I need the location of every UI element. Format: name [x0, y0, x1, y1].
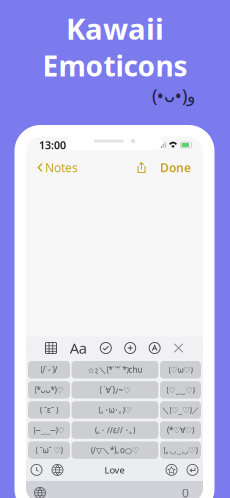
staticText: ＼(♡_♡)／	[161, 405, 199, 415]
staticText: Notes	[45, 159, 78, 175]
button[interactable]: Table	[45, 342, 56, 353]
button[interactable]: Recents	[26, 464, 47, 475]
button[interactable]: Love	[68, 459, 161, 480]
button[interactable]: ( ˉεˉ )	[28, 401, 70, 419]
button[interactable]: Return	[182, 464, 203, 475]
staticText: Aa	[70, 338, 87, 358]
button[interactable]: Done	[150, 154, 197, 180]
staticText: (*ᴗᴗ*)♡	[34, 384, 63, 395]
button[interactable]: Next keyboard	[26, 483, 46, 498]
button[interactable]: (♡ω♡)	[160, 361, 201, 378]
button[interactable]: ＼(♡_♡)／	[160, 401, 201, 419]
button[interactable]: (♡‿‿♡)	[160, 381, 201, 399]
button[interactable]: Next keyboard	[47, 464, 68, 475]
staticText: (♡ω♡)	[168, 364, 192, 375]
staticText: (｡･ω･｡)♡	[98, 405, 131, 415]
button[interactable]: (*♡∀♡)	[160, 421, 201, 439]
staticText: (/▽＼*)｡o○♡	[91, 445, 139, 455]
button[interactable]: Favorites	[161, 464, 182, 475]
staticText: 13:00	[39, 138, 66, 152]
button[interactable]: ☆ﾐ＼(*ˊ꒳ˋ*)chu	[72, 361, 158, 378]
staticText: (*♡∀♡)	[167, 425, 194, 435]
button[interactable]: (｡◡‿◡♡)	[160, 441, 201, 459]
button[interactable]: Close	[174, 343, 184, 353]
staticText: Emoticons	[42, 47, 187, 84]
button[interactable]: Share	[133, 158, 150, 177]
staticText: 0	[182, 485, 189, 498]
button[interactable]: (｡･ //ε// ･｡)	[72, 421, 158, 439]
staticText: (｡◡‿◡♡)	[163, 445, 197, 455]
button[interactable]: ( ´∀`)ﾉ~♡	[72, 381, 158, 399]
button[interactable]: (*ᴗᴗ*)♡	[28, 381, 70, 399]
button[interactable]: (｡･ω･｡)♡	[72, 401, 158, 419]
button[interactable]: Aa	[70, 338, 87, 358]
button[interactable]: (─‿‿─)♡	[28, 421, 70, 439]
staticText: Love	[104, 464, 124, 476]
button[interactable]: (/ˊᵕˋ)/	[28, 361, 70, 378]
staticText: ( ˘ω˘ ♡)	[35, 445, 62, 455]
button[interactable]: ( ˘ω˘ ♡)	[28, 441, 70, 459]
staticText: (｡･ //ε// ･｡)	[95, 425, 135, 435]
staticText: (•ᴗ•)و	[152, 84, 195, 107]
staticText: (♡‿‿♡)	[166, 384, 194, 395]
staticText: ( ´∀`)ﾉ~♡	[99, 384, 130, 395]
staticText: (─‿‿─)♡	[33, 425, 64, 435]
staticText: Kawaii	[66, 9, 164, 48]
button[interactable]: Add	[125, 342, 136, 353]
staticText: ( ˉεˉ )	[40, 405, 58, 415]
button[interactable]: Markup	[149, 342, 160, 353]
staticText: ☆ﾐ＼(*ˊ꒳ˋ*)chu	[87, 364, 142, 375]
button[interactable]: Notes	[32, 154, 78, 180]
button[interactable]: 0	[182, 481, 203, 498]
staticText: (/ˊᵕˋ)/	[40, 364, 57, 375]
staticText: Done	[160, 159, 191, 175]
button[interactable]: (/▽＼*)｡o○♡	[72, 441, 158, 459]
button[interactable]: Checklist	[100, 342, 111, 353]
